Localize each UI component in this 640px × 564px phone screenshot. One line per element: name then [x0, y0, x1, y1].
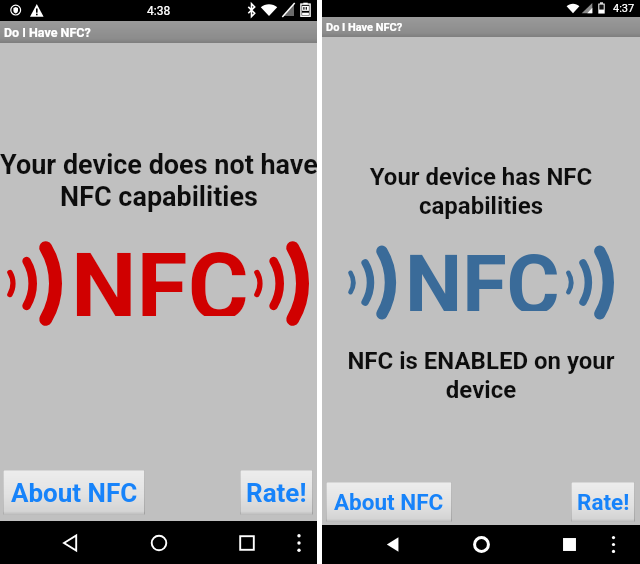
staticText: NFC — [405, 238, 560, 311]
staticText: Do I Have NFC? — [326, 21, 403, 34]
button[interactable]: Back — [349, 525, 437, 564]
staticText: NFC — [71, 233, 249, 316]
button[interactable]: Recent apps — [525, 525, 613, 564]
staticText: NFC is ENABLED on your device — [322, 347, 640, 404]
button[interactable]: Home — [115, 521, 203, 564]
staticText: Your device has NFC capabilities — [322, 163, 640, 220]
button[interactable]: More options — [281, 521, 317, 564]
staticText: Your device does not have NFC capabiliti… — [0, 149, 317, 212]
button[interactable]: Home — [437, 525, 525, 564]
button[interactable]: Recent apps — [203, 521, 291, 564]
button[interactable]: Rate! — [240, 470, 313, 515]
staticText: About NFC — [334, 489, 444, 515]
button[interactable]: Back — [27, 521, 115, 564]
button[interactable]: About NFC — [3, 470, 145, 515]
staticText: 4:38 — [147, 4, 171, 18]
staticText: About NFC — [11, 478, 138, 508]
staticText: Rate! — [246, 478, 307, 508]
staticText: Rate! — [577, 489, 630, 515]
button[interactable]: About NFC — [326, 482, 452, 522]
button[interactable]: More options — [586, 525, 640, 564]
staticText: 4:37 — [613, 2, 635, 15]
button[interactable]: Rate! — [571, 482, 635, 522]
staticText: Do I Have NFC? — [4, 25, 91, 40]
